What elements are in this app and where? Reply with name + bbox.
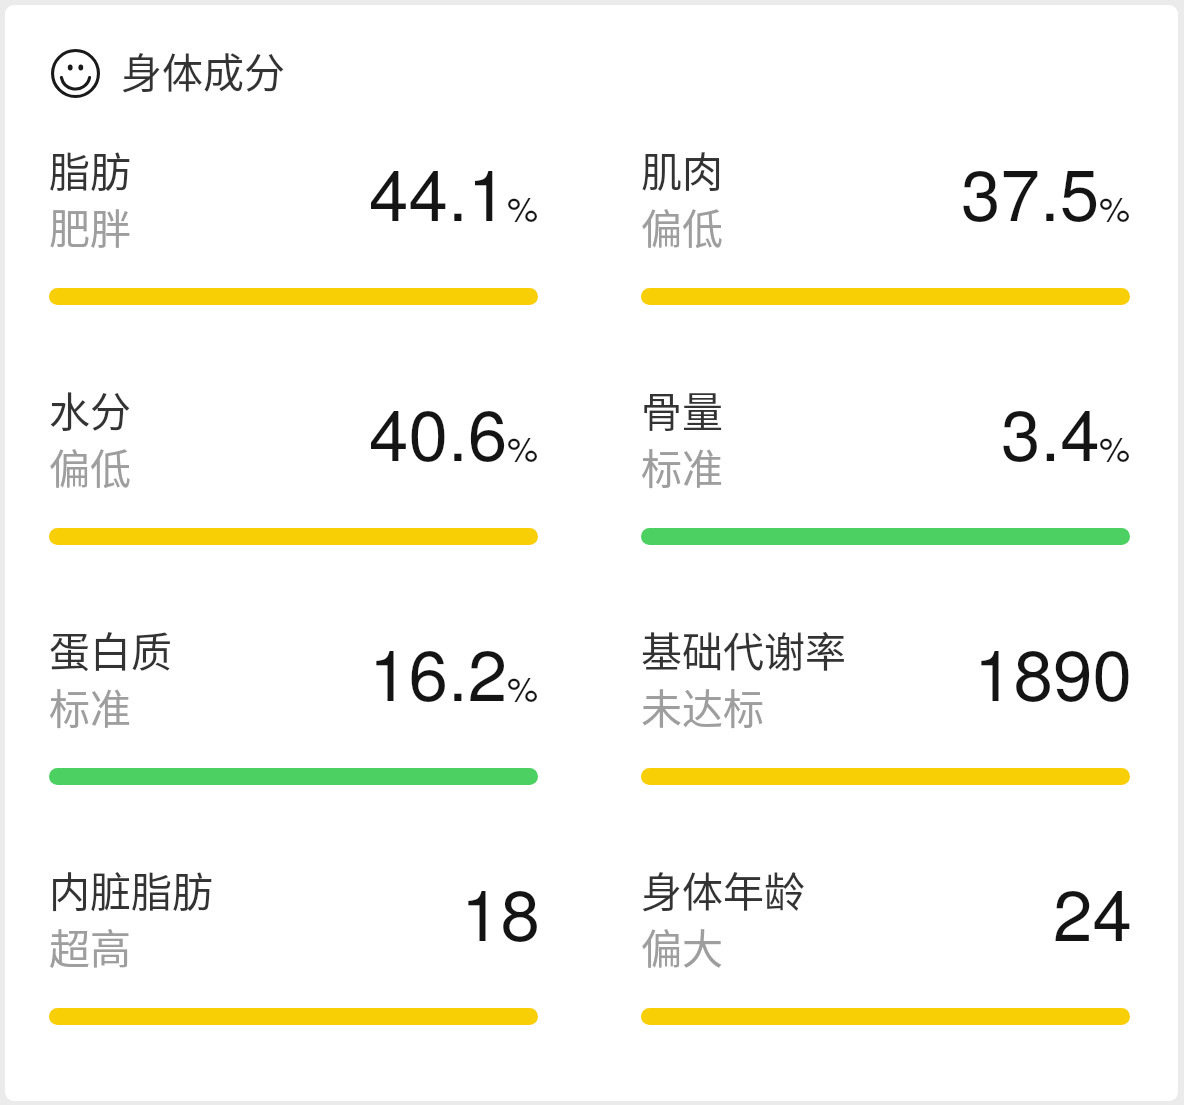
button[interactable]: 肌肉	[641, 139, 1130, 305]
staticText: 肌肉	[641, 139, 723, 198]
staticText: 身体成分	[121, 40, 285, 99]
staticText: 身体年龄	[641, 859, 805, 918]
staticText: %	[507, 182, 539, 232]
staticText: 偏低	[49, 436, 131, 495]
staticText: 水分	[49, 379, 131, 438]
staticText: 超高	[49, 916, 131, 975]
staticText: 内脏脂肪	[49, 859, 213, 918]
button[interactable]: 身体成分 Body composition	[46, 35, 291, 105]
staticText: 脂肪	[49, 139, 131, 198]
staticText: 18	[461, 859, 540, 961]
button[interactable]: 身体年龄	[641, 859, 1130, 1025]
staticText: 蛋白质	[49, 619, 172, 678]
staticText: 基础代谢率	[641, 619, 846, 678]
staticText: 16.2	[369, 619, 508, 721]
other: 身体成分 Body composition	[51, 49, 100, 98]
button[interactable]: 基础代谢率	[641, 619, 1130, 785]
staticText: 骨量	[641, 379, 723, 438]
staticText: %	[507, 662, 539, 712]
staticText: 37.5	[961, 139, 1100, 241]
button[interactable]: 脂肪	[49, 139, 538, 305]
staticText: 3.4	[1001, 379, 1100, 481]
staticText: 肥胖	[49, 196, 131, 255]
button[interactable]: 骨量	[641, 379, 1130, 545]
staticText: 标准	[49, 676, 131, 735]
button[interactable]: 内脏脂肪	[49, 859, 538, 1025]
staticText: %	[1099, 422, 1131, 472]
staticText: 40.6	[369, 379, 508, 481]
staticText: %	[507, 422, 539, 472]
staticText: 标准	[641, 436, 723, 495]
button[interactable]: 水分	[49, 379, 538, 545]
staticText: 偏低	[641, 196, 723, 255]
staticText: 44.1	[369, 139, 508, 241]
staticText: 24	[1053, 859, 1132, 961]
staticText: 偏大	[641, 916, 723, 975]
staticText: 未达标	[641, 676, 764, 735]
button[interactable]: 蛋白质	[49, 619, 538, 785]
staticText: %	[1099, 182, 1131, 232]
staticText: 1890	[974, 619, 1132, 721]
